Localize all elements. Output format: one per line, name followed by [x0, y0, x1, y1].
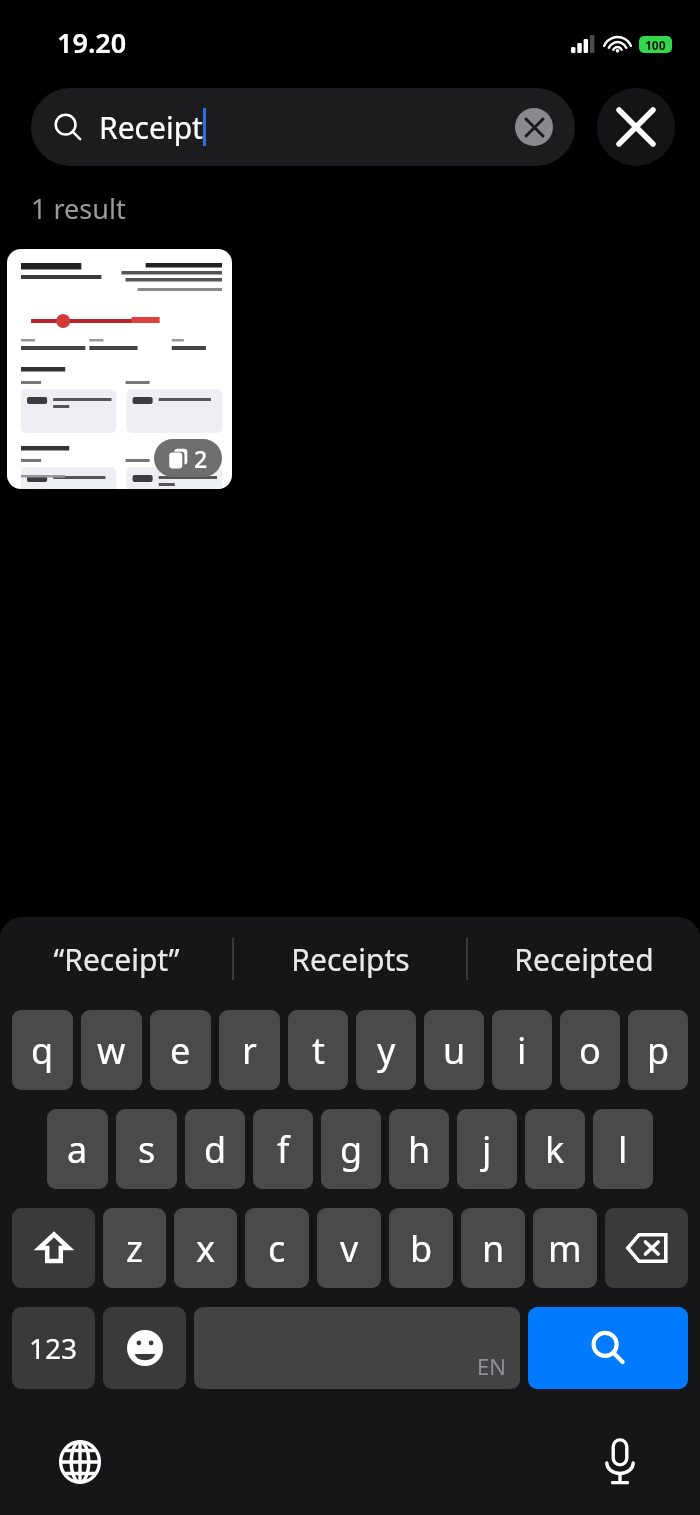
staticText: x: [196, 1224, 216, 1273]
staticText: j: [482, 1125, 492, 1174]
button[interactable]: m: [533, 1208, 597, 1288]
staticText: v: [340, 1224, 359, 1273]
button[interactable]: d: [185, 1109, 245, 1189]
button[interactable]: f: [253, 1109, 313, 1189]
staticText: “Receipt”: [53, 939, 180, 980]
staticText: y: [377, 1026, 396, 1075]
staticText: a: [67, 1125, 88, 1174]
button[interactable]: Change keyboard language: [40, 1422, 120, 1502]
button[interactable]: Backspace: [605, 1208, 688, 1288]
staticText: z: [126, 1224, 143, 1273]
staticText: Receipted: [514, 939, 654, 980]
button[interactable]: e: [150, 1010, 211, 1090]
button[interactable]: g: [321, 1109, 381, 1189]
staticText: i: [517, 1026, 527, 1075]
staticText: d: [204, 1125, 227, 1174]
button[interactable]: i: [492, 1010, 552, 1090]
staticText: q: [31, 1026, 54, 1075]
button[interactable]: j: [457, 1109, 517, 1189]
staticText: 19.20: [57, 24, 127, 61]
button[interactable]: Clear text: [515, 108, 553, 146]
staticText: p: [647, 1026, 670, 1075]
button[interactable]: 123: [12, 1307, 95, 1389]
button[interactable]: t: [288, 1010, 348, 1090]
button[interactable]: Shift: [12, 1208, 95, 1288]
button[interactable]: w: [81, 1010, 142, 1090]
button[interactable]: n: [461, 1208, 525, 1288]
staticText: w: [97, 1026, 126, 1075]
staticText: o: [579, 1026, 601, 1075]
button[interactable]: y: [356, 1010, 416, 1090]
button[interactable]: Receipt: [31, 88, 575, 166]
button[interactable]: Dictation: [580, 1422, 660, 1502]
staticText: l: [618, 1125, 628, 1174]
button[interactable]: v: [317, 1208, 381, 1288]
button[interactable]: l: [593, 1109, 653, 1189]
staticText: EN: [477, 1351, 506, 1381]
button[interactable]: 2: [7, 249, 232, 489]
button[interactable]: o: [560, 1010, 620, 1090]
button[interactable]: b: [389, 1208, 453, 1288]
button[interactable]: EN: [194, 1307, 520, 1389]
button[interactable]: Search: [528, 1307, 688, 1389]
staticText: s: [138, 1125, 156, 1174]
staticText: n: [482, 1224, 505, 1273]
staticText: 1 result: [31, 190, 126, 227]
button[interactable]: u: [424, 1010, 484, 1090]
staticText: u: [443, 1026, 466, 1075]
button[interactable]: Close search: [597, 88, 675, 166]
button[interactable]: s: [116, 1109, 177, 1189]
button[interactable]: Emoji: [103, 1307, 186, 1389]
button[interactable]: a: [47, 1109, 108, 1189]
button[interactable]: Receipted: [468, 917, 700, 1001]
button[interactable]: h: [389, 1109, 449, 1189]
staticText: m: [548, 1224, 582, 1273]
button[interactable]: p: [628, 1010, 688, 1090]
button[interactable]: c: [245, 1208, 309, 1288]
staticText: h: [408, 1125, 431, 1174]
button[interactable]: q: [12, 1010, 73, 1090]
staticText: 100: [645, 37, 666, 53]
staticText: 2: [194, 443, 208, 474]
staticText: k: [545, 1125, 565, 1174]
staticText: e: [170, 1026, 191, 1075]
staticText: g: [340, 1125, 363, 1174]
staticText: 123: [29, 1329, 78, 1367]
staticText: Receipts: [291, 939, 410, 980]
button[interactable]: “Receipt”: [0, 917, 232, 1001]
button[interactable]: x: [174, 1208, 237, 1288]
staticText: c: [268, 1224, 286, 1273]
button[interactable]: k: [525, 1109, 585, 1189]
button[interactable]: z: [103, 1208, 166, 1288]
button[interactable]: Receipts: [234, 917, 466, 1001]
staticText: t: [312, 1026, 325, 1075]
staticText: b: [410, 1224, 433, 1273]
button[interactable]: r: [219, 1010, 280, 1090]
staticText: r: [242, 1026, 257, 1075]
staticText: f: [277, 1125, 290, 1174]
staticText: Receipt: [99, 107, 203, 148]
